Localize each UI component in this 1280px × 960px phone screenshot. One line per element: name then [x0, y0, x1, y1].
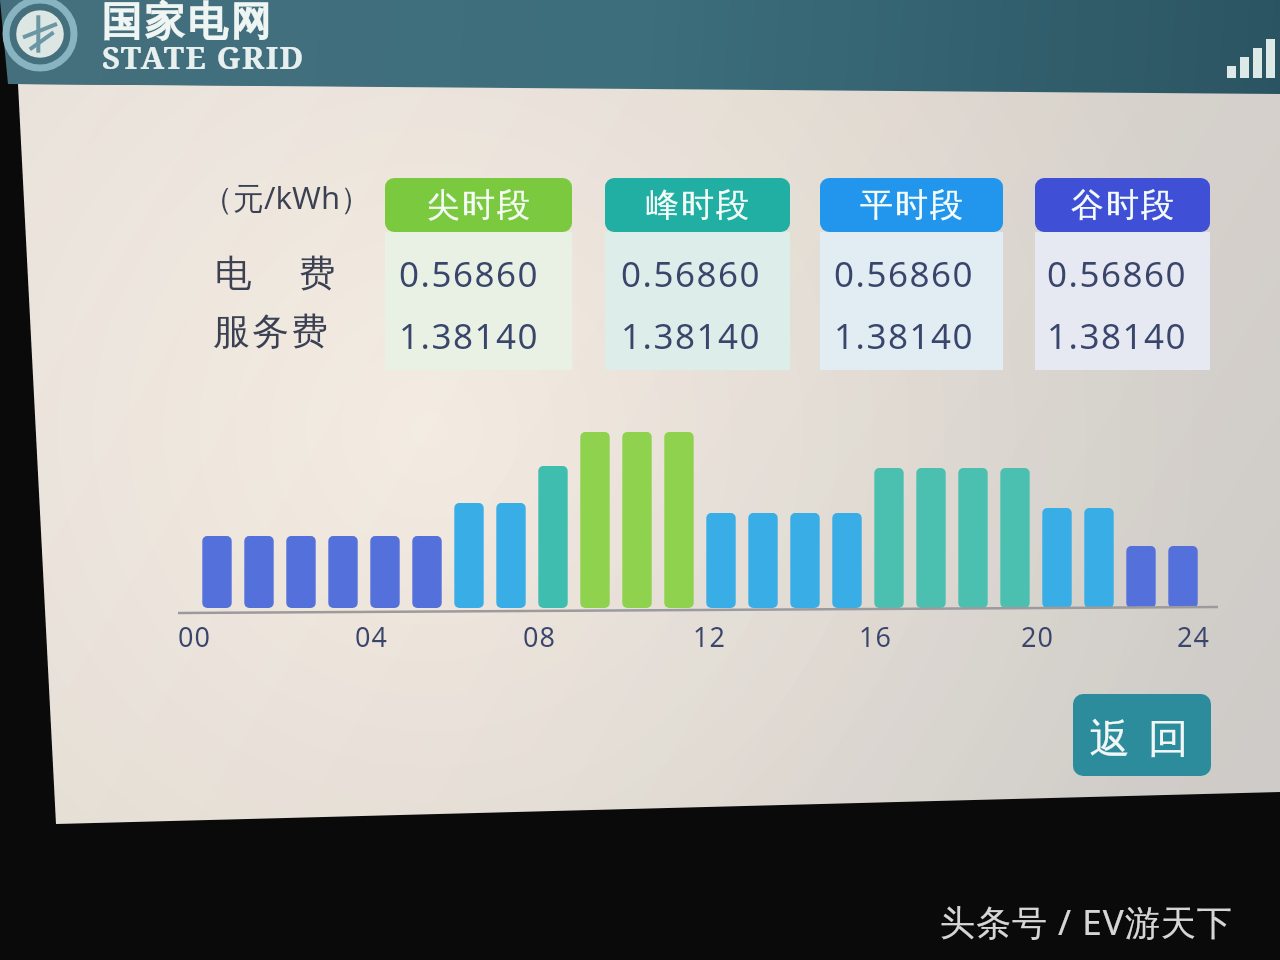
button[interactable]: 返回 [1073, 694, 1211, 776]
